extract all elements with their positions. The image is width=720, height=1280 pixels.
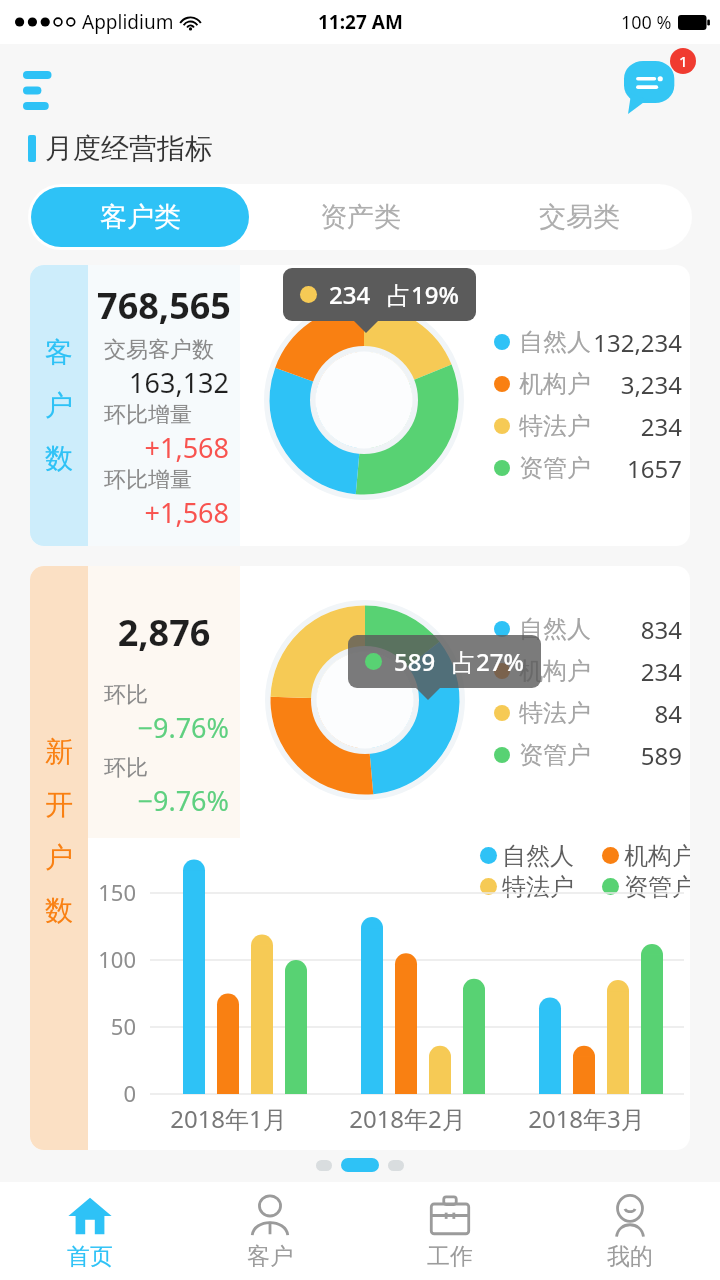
staticText: 1 xyxy=(679,51,688,71)
staticText: 环比 xyxy=(104,754,148,782)
staticText: 交易类 xyxy=(539,200,620,234)
staticText: 资管户 xyxy=(519,453,591,483)
button[interactable]: 新 xyxy=(30,566,690,1150)
staticText: 资管户 xyxy=(624,872,690,902)
staticText: 客户类 xyxy=(100,200,181,234)
staticText: 特法户 xyxy=(519,698,591,728)
staticText: 自然人 xyxy=(519,327,591,357)
staticText: 机构户 xyxy=(519,369,591,399)
staticText: 589 xyxy=(394,645,436,678)
staticText: −9.76% xyxy=(104,782,229,819)
staticText: 2,876 xyxy=(88,608,240,657)
button[interactable]: Messages xyxy=(622,48,696,116)
button[interactable]: 交易类 xyxy=(470,187,689,247)
staticText: 2018年1月 xyxy=(136,1102,321,1135)
staticText: 768,565 xyxy=(88,281,240,330)
button[interactable]: 客 xyxy=(30,265,690,546)
staticText: 特法户 xyxy=(519,411,591,441)
staticText: 新 xyxy=(45,734,73,769)
staticText: 客户 xyxy=(247,1242,293,1271)
staticText: 我的 xyxy=(607,1242,653,1271)
staticText: 自然人 xyxy=(502,841,574,871)
staticText: +1,568 xyxy=(104,429,229,466)
button[interactable]: 资产类 xyxy=(250,187,470,247)
button[interactable]: 客户 xyxy=(180,1182,360,1280)
staticText: 0 xyxy=(88,1078,136,1108)
staticText: 50 xyxy=(88,1011,136,1041)
staticText: Applidium xyxy=(82,9,174,35)
staticText: 占19% xyxy=(387,278,459,311)
button[interactable]: 我的 xyxy=(540,1182,720,1280)
staticText: 开 xyxy=(45,787,73,822)
staticText: 工作 xyxy=(427,1242,473,1271)
staticText: 163,132 xyxy=(104,364,229,401)
staticText: 2018年2月 xyxy=(315,1102,500,1135)
staticText: 834 xyxy=(591,613,682,646)
staticText: 特法户 xyxy=(502,872,574,902)
staticText: 3,234 xyxy=(591,368,682,401)
staticText: 环比增量 xyxy=(104,401,192,429)
button[interactable]: 工作 xyxy=(360,1182,540,1280)
staticText: 客 xyxy=(45,335,73,370)
staticText: 占27% xyxy=(452,645,524,678)
staticText: 234 xyxy=(329,278,371,311)
staticText: 1657 xyxy=(591,452,682,485)
staticText: 环比 xyxy=(104,681,148,709)
staticText: 环比增量 xyxy=(104,466,192,494)
button[interactable]: Menu xyxy=(14,52,78,114)
staticText: 100 % xyxy=(621,10,672,35)
staticText: 自然人 xyxy=(519,614,591,644)
staticText: 100 xyxy=(88,944,136,974)
staticText: +1,568 xyxy=(104,494,229,531)
staticText: 2018年3月 xyxy=(494,1102,679,1135)
button[interactable]: 首页 xyxy=(0,1182,180,1280)
button[interactable]: 客户类 xyxy=(31,187,249,247)
staticText: 589 xyxy=(591,739,682,772)
staticText: 资产类 xyxy=(320,200,401,234)
staticText: 首页 xyxy=(67,1242,113,1271)
staticText: 户 xyxy=(45,840,73,875)
staticText: −9.76% xyxy=(104,709,229,746)
staticText: 234 xyxy=(591,655,682,688)
staticText: 150 xyxy=(88,877,136,907)
staticText: 资管户 xyxy=(519,740,591,770)
staticText: 机构户 xyxy=(519,656,591,686)
staticText: 234 xyxy=(591,410,682,443)
staticText: 11:27 AM xyxy=(318,9,403,35)
staticText: 月度经营指标 xyxy=(45,131,213,166)
staticText: 84 xyxy=(591,697,682,730)
staticText: 132,234 xyxy=(591,326,682,359)
staticText: 交易客户数 xyxy=(104,336,214,364)
staticText: 数 xyxy=(45,893,73,928)
staticText: 户 xyxy=(45,388,73,423)
staticText: 机构户 xyxy=(624,841,690,871)
staticText: 数 xyxy=(45,441,73,476)
